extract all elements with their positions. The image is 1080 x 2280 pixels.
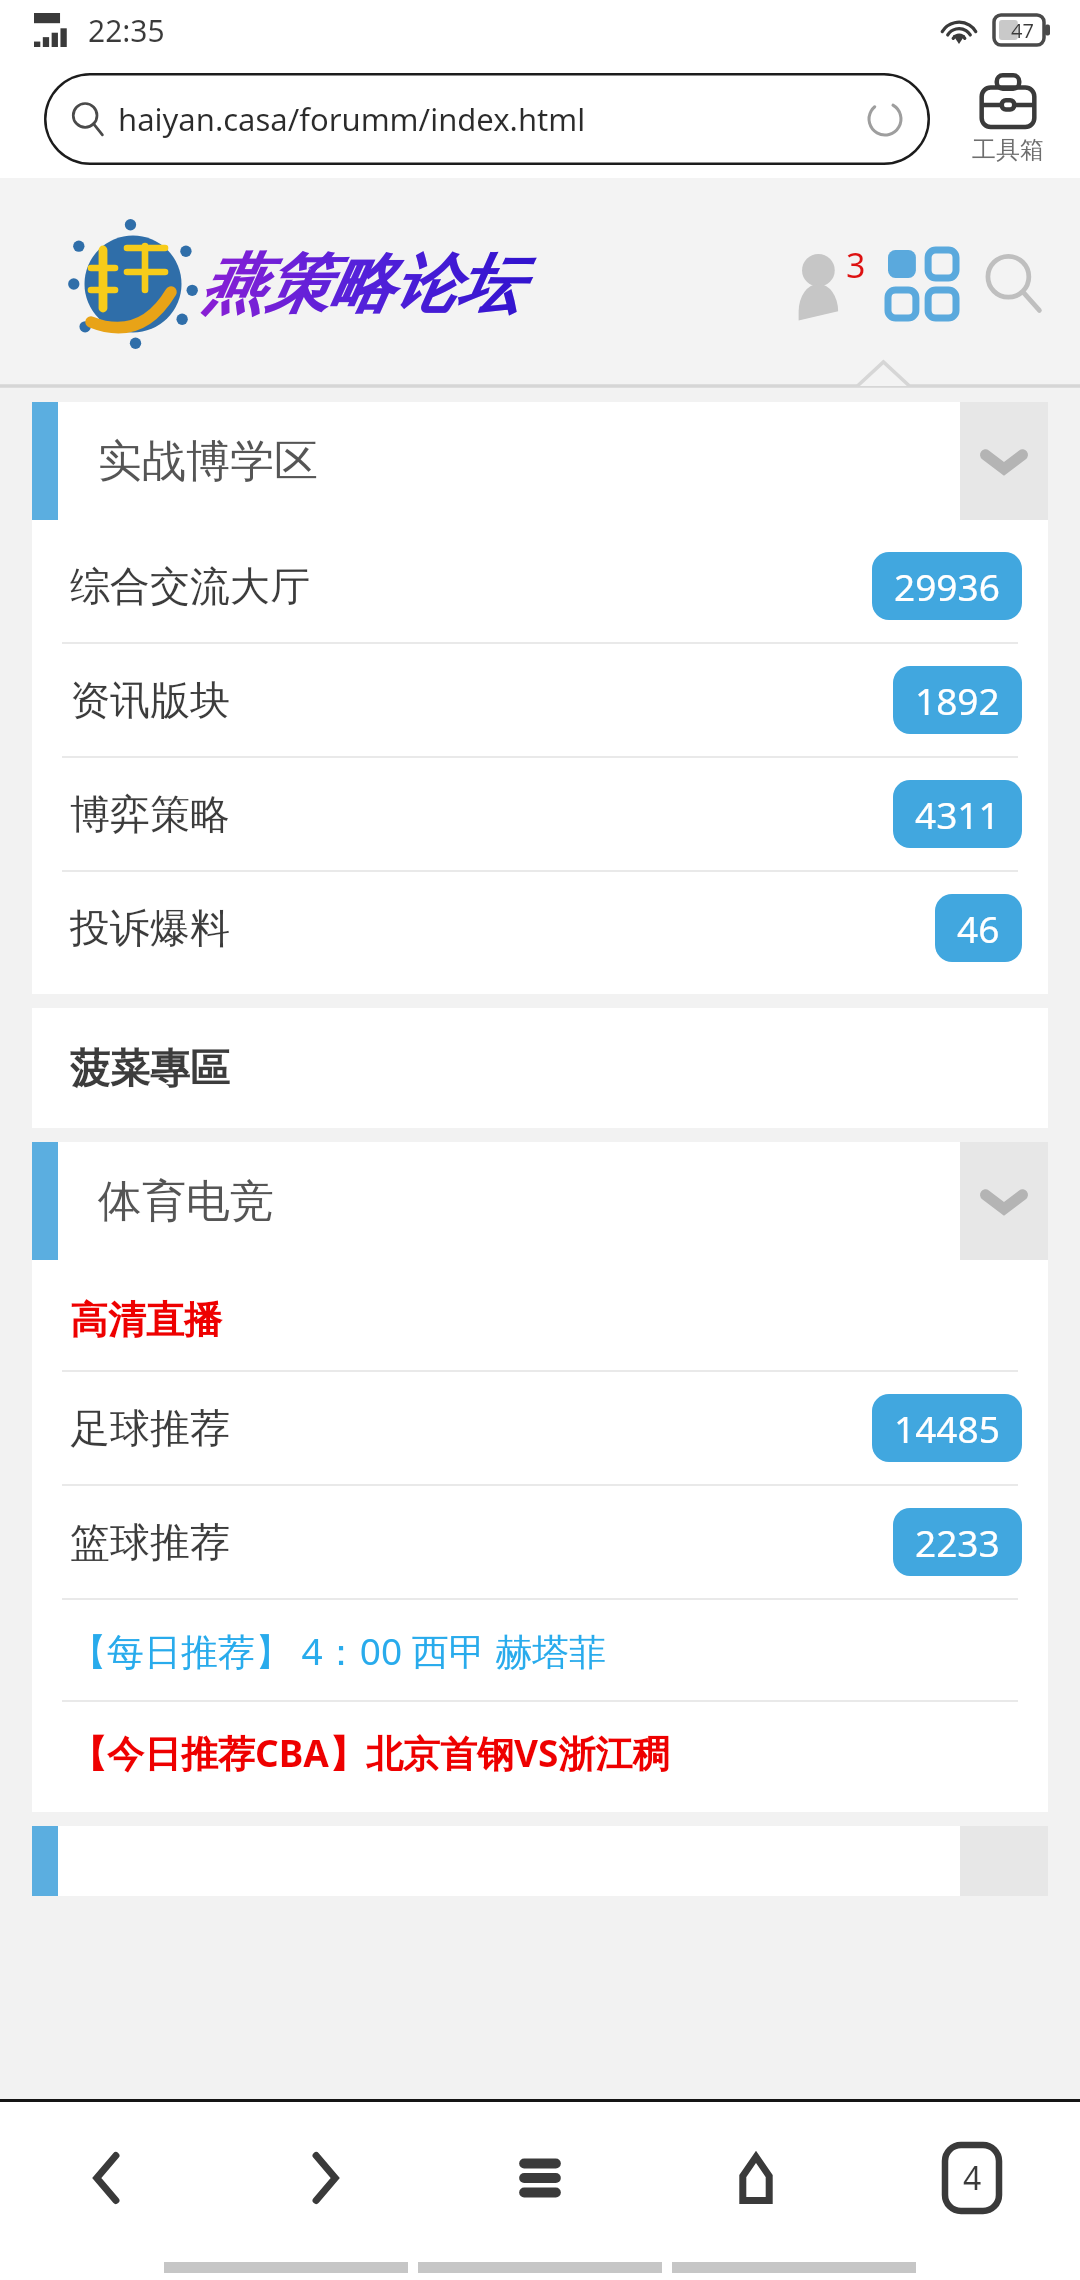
button[interactable]: 实战博学区 [32,402,1048,520]
button[interactable]: 博弈策略 [32,758,1048,870]
button[interactable]: 菠菜專區 [32,1018,1048,1118]
staticText: 博弈策略 [70,789,230,839]
other: Toolbox [980,73,1036,131]
button[interactable]: Home [648,2102,864,2254]
button[interactable]: 【每日推荐】 4：00 西甲 赫塔菲 [32,1600,1048,1700]
staticText: 29936 [894,561,1000,611]
staticText: 4 [963,2156,982,2200]
button[interactable]: Account [784,246,870,322]
staticText: 体育电竞 [98,1174,274,1229]
button[interactable]: 篮球推荐 [32,1486,1048,1598]
staticText: 1892 [915,675,1000,725]
staticText: 46 [957,903,1000,953]
button[interactable]: haiyan.casa/forumm/index.html [44,73,930,165]
staticText: 燕策略论坛 [200,244,520,325]
staticText: 篮球推荐 [70,1517,230,1567]
button[interactable]: Forward [216,2102,432,2254]
button[interactable]: 高清直播 [32,1270,1048,1370]
staticText: 菠菜專區 [70,1043,230,1093]
staticText: 综合交流大厅 [70,561,310,611]
button[interactable]: Back [0,2102,216,2254]
staticText: 3 [846,242,866,288]
button[interactable]: Toolbox [950,73,1066,165]
button[interactable]: Menu [432,2102,648,2254]
staticText: 22:35 [88,10,165,51]
staticText: haiyan.casa/forumm/index.html [118,98,586,140]
staticText: 【今日推荐CBA】北京首钢VS浙江稠 [70,1727,670,1778]
staticText: 47 [1011,17,1034,44]
staticText: 【每日推荐】 4：00 西甲 赫塔菲 [70,1625,607,1676]
button[interactable] [32,1826,1048,1896]
button[interactable]: Tabs [864,2102,1080,2254]
staticText: 工具箱 [972,135,1044,165]
staticText: 2233 [915,1517,1000,1567]
staticText: 足球推荐 [70,1403,230,1453]
staticText: 高清直播 [70,1296,222,1344]
staticText: 资讯版块 [70,675,230,725]
button[interactable]: 【今日推荐CBA】北京首钢VS浙江稠 [32,1702,1048,1802]
button[interactable]: 体育电竞 [32,1142,1048,1260]
staticText: 4311 [915,789,1000,839]
button[interactable]: 投诉爆料 [32,872,1048,984]
button[interactable]: 综合交流大厅 [32,530,1048,642]
staticText: 实战博学区 [98,434,318,489]
button[interactable]: 资讯版块 [32,644,1048,756]
button[interactable]: Sections [888,250,956,318]
button[interactable]: 足球推荐 [32,1372,1048,1484]
other: Reload [866,100,904,138]
staticText: 14485 [894,1403,1000,1453]
button[interactable]: Search [980,251,1046,317]
staticText: 投诉爆料 [70,903,230,953]
